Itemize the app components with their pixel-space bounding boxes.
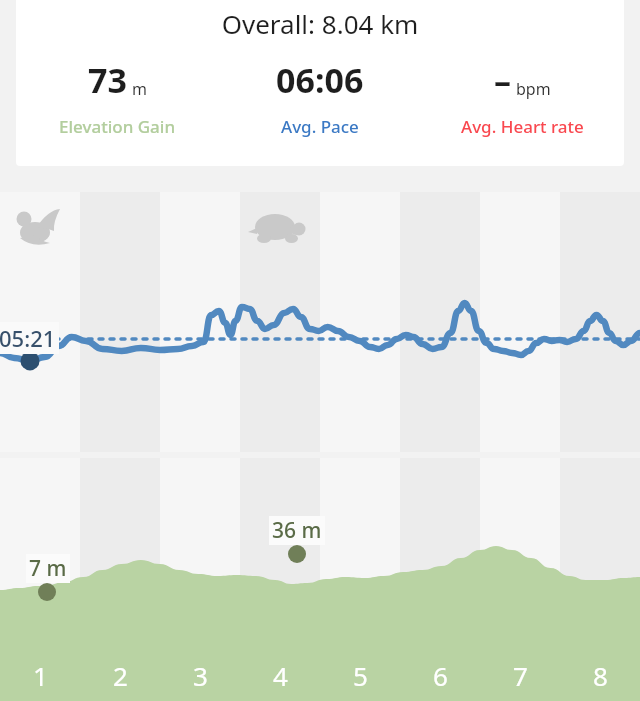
button[interactable]: 73 (16, 57, 218, 138)
staticText: m (132, 78, 147, 100)
staticText: 8 (593, 658, 608, 693)
staticText: 36 m (272, 516, 322, 545)
staticText: Avg. Pace (281, 115, 359, 138)
staticText: Avg. Heart rate (461, 115, 584, 138)
button[interactable]: Fastest pace (14, 204, 64, 244)
staticText: 4 (273, 658, 288, 693)
staticText: Elevation Gain (59, 115, 176, 138)
staticText: 5 (353, 658, 368, 693)
staticText: 05:21 (0, 323, 56, 353)
staticText: 7 (513, 658, 528, 693)
staticText: 6 (433, 658, 448, 693)
staticText: Overall: 8.04 km (16, 6, 624, 41)
staticText: 06:06 (276, 57, 364, 103)
button[interactable]: Slowest pace (254, 206, 306, 244)
staticText: 3 (193, 658, 208, 693)
staticText: 73 (88, 57, 127, 103)
button[interactable]: 7 m (0, 458, 640, 701)
staticText: 2 (113, 658, 128, 693)
button[interactable]: Overall: 8.04 km (16, 0, 624, 166)
staticText: – (494, 57, 511, 103)
staticText: bpm (516, 78, 551, 100)
staticText: 7 m (29, 554, 67, 583)
staticText: 1 (33, 658, 48, 693)
button[interactable]: 05:21 (0, 192, 640, 452)
button[interactable]: 06:06 (218, 57, 421, 138)
button[interactable]: – (421, 57, 624, 138)
